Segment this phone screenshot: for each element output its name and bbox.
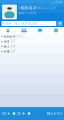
button[interactable]: 昵称名字 xyxy=(21,5,37,10)
staticText: 我的好友 xyxy=(4,35,16,38)
button[interactable]: Add friend xyxy=(57,21,62,26)
button[interactable]: Settings xyxy=(1,111,6,116)
staticText: 消息管理 xyxy=(50,112,62,115)
staticText: 3/7 xyxy=(11,40,16,43)
button[interactable]: 我的好友 xyxy=(0,34,64,39)
button[interactable]: Games xyxy=(21,111,26,116)
staticText: 家人 xyxy=(4,45,10,48)
button[interactable]: Close xyxy=(59,1,63,4)
button[interactable]: 消息管理 xyxy=(47,112,62,115)
staticText: 8/12 xyxy=(17,35,24,38)
button[interactable]: My profile xyxy=(2,5,16,19)
button[interactable]: Friends xyxy=(0,27,16,34)
button[interactable]: Music xyxy=(16,111,21,116)
button[interactable]: More xyxy=(26,111,31,116)
staticText: 同事 xyxy=(4,50,10,53)
staticText: 搜索：找人/找群/找消息 xyxy=(5,22,37,25)
button[interactable]: 同事 xyxy=(0,49,64,54)
staticText: 编辑个人签名 xyxy=(18,11,36,15)
staticText: 朋友 xyxy=(4,40,10,43)
button[interactable]: Mail xyxy=(11,111,16,116)
button[interactable]: Search xyxy=(1,21,56,26)
button[interactable]: Maximise xyxy=(55,1,59,4)
button[interactable]: Groups xyxy=(16,27,32,34)
button[interactable]: Contacts xyxy=(48,27,64,34)
button[interactable]: 家人 xyxy=(0,44,64,49)
staticText: Lv.32 会员 xyxy=(42,6,56,10)
button[interactable]: 编辑个人签名 xyxy=(18,11,36,15)
staticText: 0/5 xyxy=(11,50,16,53)
button[interactable]: 朋友 xyxy=(0,39,64,44)
button[interactable]: QZone xyxy=(6,111,11,116)
button[interactable]: Minimise xyxy=(51,1,55,4)
button[interactable]: Devices xyxy=(32,27,48,34)
staticText: 2/4 xyxy=(11,45,16,48)
staticText: 昵称名字 xyxy=(21,5,37,10)
